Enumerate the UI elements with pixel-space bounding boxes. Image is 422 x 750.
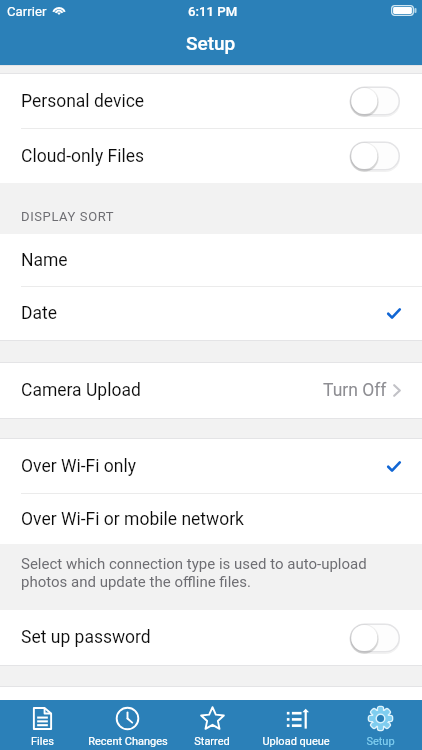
staticText: Upload queue [262, 735, 330, 748]
staticText: Files [31, 735, 54, 748]
staticText: Turn Off [323, 380, 387, 401]
staticText: 6:11 PM [188, 4, 238, 19]
staticText: Set up password [21, 627, 151, 648]
staticText: DISPLAY SORT [21, 209, 115, 224]
staticText: Personal device [21, 91, 145, 112]
staticText: Setup [186, 32, 236, 54]
staticText: Carrier [7, 4, 47, 19]
button[interactable]: Files [0, 700, 85, 750]
staticText: Camera Upload [21, 380, 141, 401]
staticText: Name [21, 250, 68, 271]
staticText: Date [21, 303, 58, 324]
staticText: Setup [366, 735, 395, 748]
staticText: Over Wi-Fi only [21, 456, 137, 477]
button[interactable]: Setup [338, 700, 422, 750]
button[interactable]: Set up password [0, 610, 422, 665]
button[interactable]: Cloud-only Files [0, 129, 422, 183]
button[interactable]: Name [0, 234, 422, 286]
button[interactable]: Over Wi-Fi only [0, 439, 422, 493]
staticText: Starred [194, 735, 230, 748]
button[interactable]: Upload queue [254, 700, 338, 750]
button[interactable]: Personal device [0, 74, 422, 128]
button[interactable]: Camera Upload [0, 363, 422, 418]
button[interactable]: Date [0, 287, 422, 340]
button[interactable]: Over Wi-Fi or mobile network [0, 494, 422, 544]
staticText: Select which connection type is used to … [21, 555, 392, 591]
staticText: Recent Changes [88, 735, 168, 748]
staticText: Cloud-only Files [21, 146, 144, 167]
button[interactable]: Starred [170, 700, 254, 750]
button[interactable]: Recent Changes [85, 700, 170, 750]
staticText: Over Wi-Fi or mobile network [21, 509, 244, 530]
